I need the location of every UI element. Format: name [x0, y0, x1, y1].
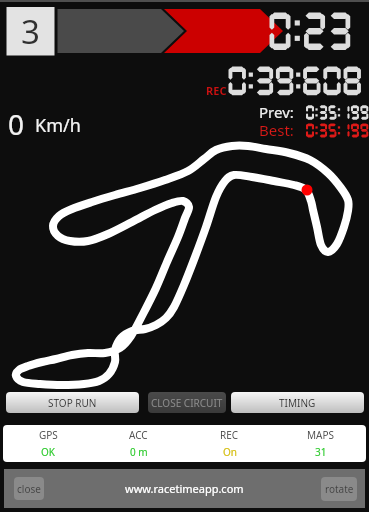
staticText: MAPS — [307, 428, 334, 442]
button[interactable]: Lap counter — [6, 7, 54, 55]
staticText: On — [223, 445, 237, 459]
staticText: REC — [220, 428, 239, 442]
button[interactable]: TIMING — [231, 392, 364, 413]
staticText: ACC — [129, 428, 148, 442]
staticText: STOP RUN — [48, 396, 97, 410]
staticText: Best: — [259, 120, 294, 140]
staticText: close — [17, 482, 41, 496]
staticText: 3 — [21, 9, 40, 54]
staticText: Km/h — [35, 113, 81, 138]
staticText: REC — [206, 83, 227, 98]
staticText: Prev: — [259, 102, 294, 122]
staticText: 0 m — [130, 445, 148, 459]
staticText: www.racetimeapp.com — [125, 481, 244, 496]
staticText: 0 — [8, 105, 25, 143]
button[interactable]: close — [14, 477, 44, 500]
staticText: rotate — [325, 482, 354, 496]
staticText: GPS — [39, 428, 58, 442]
button[interactable]: CLOSE CIRCUIT — [148, 392, 226, 413]
staticText: 31 — [315, 445, 327, 459]
staticText: OK — [41, 445, 55, 459]
staticText: CLOSE CIRCUIT — [151, 396, 223, 410]
staticText: TIMING — [279, 396, 316, 410]
button[interactable]: STOP RUN — [6, 392, 139, 413]
button[interactable]: rotate — [321, 477, 357, 501]
